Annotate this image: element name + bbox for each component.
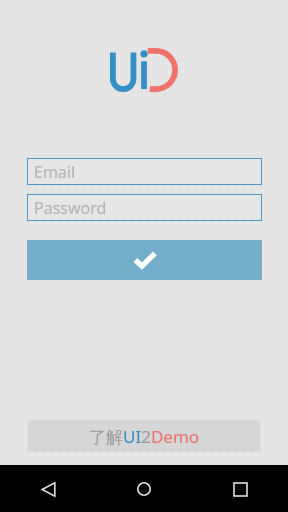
button[interactable]: Password: [27, 194, 262, 221]
staticText: Email: [34, 161, 76, 183]
button[interactable]: Sign in: [27, 240, 262, 280]
staticText: Password: [34, 197, 107, 219]
staticText: 了解UI2Demo: [89, 425, 200, 448]
button[interactable]: Recent apps: [218, 467, 262, 511]
button[interactable]: 了解UI2Demo: [28, 420, 260, 452]
other: UiD logo: [110, 48, 178, 92]
button[interactable]: Back: [26, 467, 70, 511]
button[interactable]: Home: [122, 467, 166, 511]
button[interactable]: Email: [27, 158, 262, 185]
